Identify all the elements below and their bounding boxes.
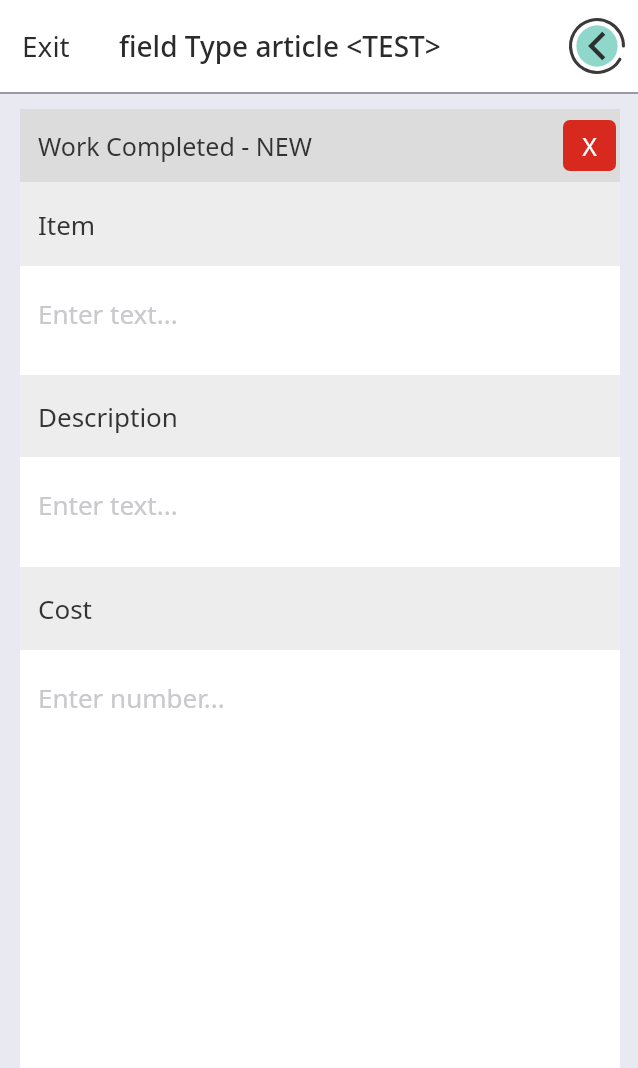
button[interactable]: X xyxy=(563,120,616,171)
staticText: Description xyxy=(38,399,178,434)
button[interactable]: Exit xyxy=(0,13,92,79)
staticText: Exit xyxy=(22,27,70,65)
staticText: X xyxy=(582,129,597,163)
button[interactable]: Enter text... xyxy=(20,266,620,375)
staticText: Enter text... xyxy=(38,487,178,522)
staticText: Cost xyxy=(38,591,93,626)
button[interactable]: Enter text... xyxy=(20,457,620,567)
staticText: Work Completed - NEW xyxy=(38,129,312,163)
button[interactable]: Back xyxy=(566,15,628,77)
staticText: Enter text... xyxy=(38,296,178,331)
staticText: field Type article <TEST> xyxy=(119,27,441,65)
staticText: Item xyxy=(38,207,96,242)
staticText: Enter number... xyxy=(38,680,225,715)
